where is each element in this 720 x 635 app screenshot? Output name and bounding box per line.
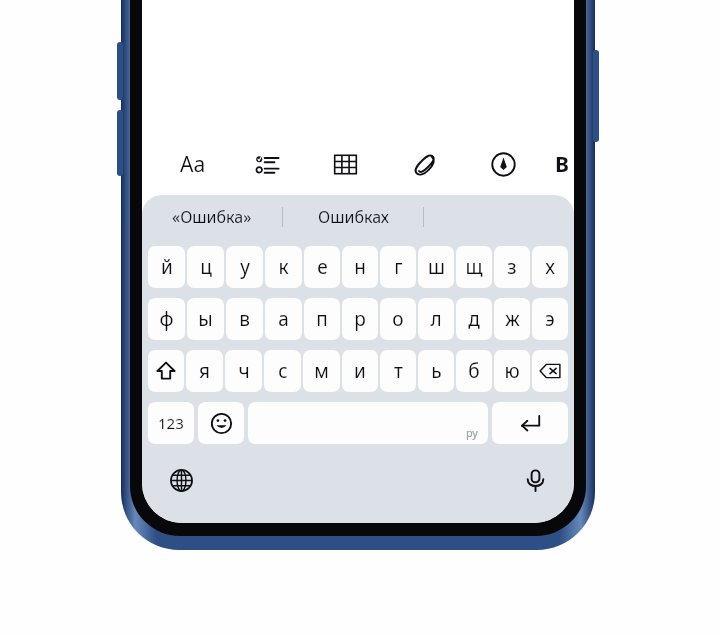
button[interactable]: а: [265, 298, 302, 340]
staticText: г: [394, 254, 403, 280]
button[interactable]: Change keyboard: [160, 459, 202, 501]
staticText: н: [354, 254, 366, 280]
button[interactable]: Dictation: [514, 459, 556, 501]
staticText: д: [468, 306, 480, 332]
button[interactable]: ю: [494, 350, 530, 392]
staticText: л: [430, 306, 442, 332]
button[interactable]: э: [532, 298, 568, 340]
staticText: ру: [466, 425, 478, 440]
button[interactable]: Markup: [481, 142, 525, 186]
button[interactable]: к: [265, 246, 302, 288]
button[interactable]: Checklist: [245, 142, 289, 186]
staticText: к: [278, 254, 289, 280]
staticText: м: [314, 358, 329, 384]
staticText: е: [317, 254, 328, 280]
button[interactable]: й: [148, 246, 185, 288]
button[interactable]: с: [264, 350, 301, 392]
button[interactable]: ц: [187, 246, 224, 288]
button[interactable]: щ: [456, 246, 492, 288]
staticText: 123: [158, 413, 184, 433]
staticText: «Ошибка»: [172, 206, 252, 228]
button[interactable]: ч: [225, 350, 262, 392]
button[interactable]: «Ошибка»: [142, 195, 282, 239]
button[interactable]: е: [304, 246, 340, 288]
button[interactable]: о: [380, 298, 416, 340]
staticText: ц: [200, 254, 212, 280]
staticText: Ошибках: [318, 206, 389, 228]
button[interactable]: Attach file: [403, 142, 447, 186]
button[interactable]: у: [226, 246, 263, 288]
button[interactable]: х: [532, 246, 568, 288]
button[interactable]: Power: [593, 50, 599, 142]
staticText: в: [239, 306, 250, 332]
button[interactable]: Shift: [148, 350, 184, 392]
button[interactable]: л: [418, 298, 454, 340]
button[interactable]: Table: [323, 142, 367, 186]
staticText: а: [278, 306, 289, 332]
staticText: Aa: [180, 150, 206, 179]
staticText: э: [545, 306, 555, 332]
staticText: х: [545, 254, 555, 280]
button[interactable]: д: [456, 298, 492, 340]
staticText: ю: [504, 358, 520, 384]
button[interactable]: н: [342, 246, 378, 288]
button[interactable]: ф: [148, 298, 185, 340]
staticText: B: [555, 150, 569, 179]
staticText: р: [354, 306, 366, 332]
staticText: п: [316, 306, 328, 332]
button[interactable]: п: [304, 298, 340, 340]
staticText: с: [278, 358, 288, 384]
button[interactable]: г: [380, 246, 416, 288]
button[interactable]: Return: [492, 402, 568, 444]
staticText: ч: [238, 358, 250, 384]
button[interactable]: в: [226, 298, 263, 340]
button[interactable]: и: [342, 350, 378, 392]
staticText: ы: [198, 306, 213, 332]
staticText: б: [468, 358, 480, 384]
staticText: ж: [505, 306, 520, 332]
button[interactable]: Ошибках: [283, 195, 423, 239]
staticText: и: [354, 358, 366, 384]
button[interactable]: я: [186, 350, 223, 392]
button[interactable]: з: [494, 246, 530, 288]
button[interactable]: Space: [248, 402, 488, 444]
button[interactable]: ш: [418, 246, 454, 288]
button[interactable]: т: [380, 350, 416, 392]
staticText: т: [394, 358, 403, 384]
button[interactable]: Backspace: [532, 350, 568, 392]
staticText: ф: [159, 306, 174, 332]
button[interactable]: Volume up: [117, 42, 123, 100]
staticText: щ: [465, 254, 483, 280]
button[interactable]: ж: [494, 298, 530, 340]
staticText: ш: [428, 254, 445, 280]
button[interactable]: ы: [187, 298, 224, 340]
button[interactable]: Emoji: [198, 402, 244, 444]
staticText: з: [507, 254, 517, 280]
button[interactable]: Aa: [171, 142, 215, 186]
staticText: о: [392, 306, 404, 332]
button[interactable]: Volume down: [117, 110, 123, 176]
button[interactable]: ь: [418, 350, 454, 392]
staticText: я: [199, 358, 210, 384]
staticText: й: [161, 254, 173, 280]
button[interactable]: м: [303, 350, 340, 392]
staticText: у: [240, 254, 250, 280]
staticText: ь: [431, 358, 442, 384]
button[interactable]: р: [342, 298, 378, 340]
button[interactable]: 123: [148, 402, 194, 444]
button[interactable]: B: [555, 142, 573, 186]
button[interactable]: б: [456, 350, 492, 392]
